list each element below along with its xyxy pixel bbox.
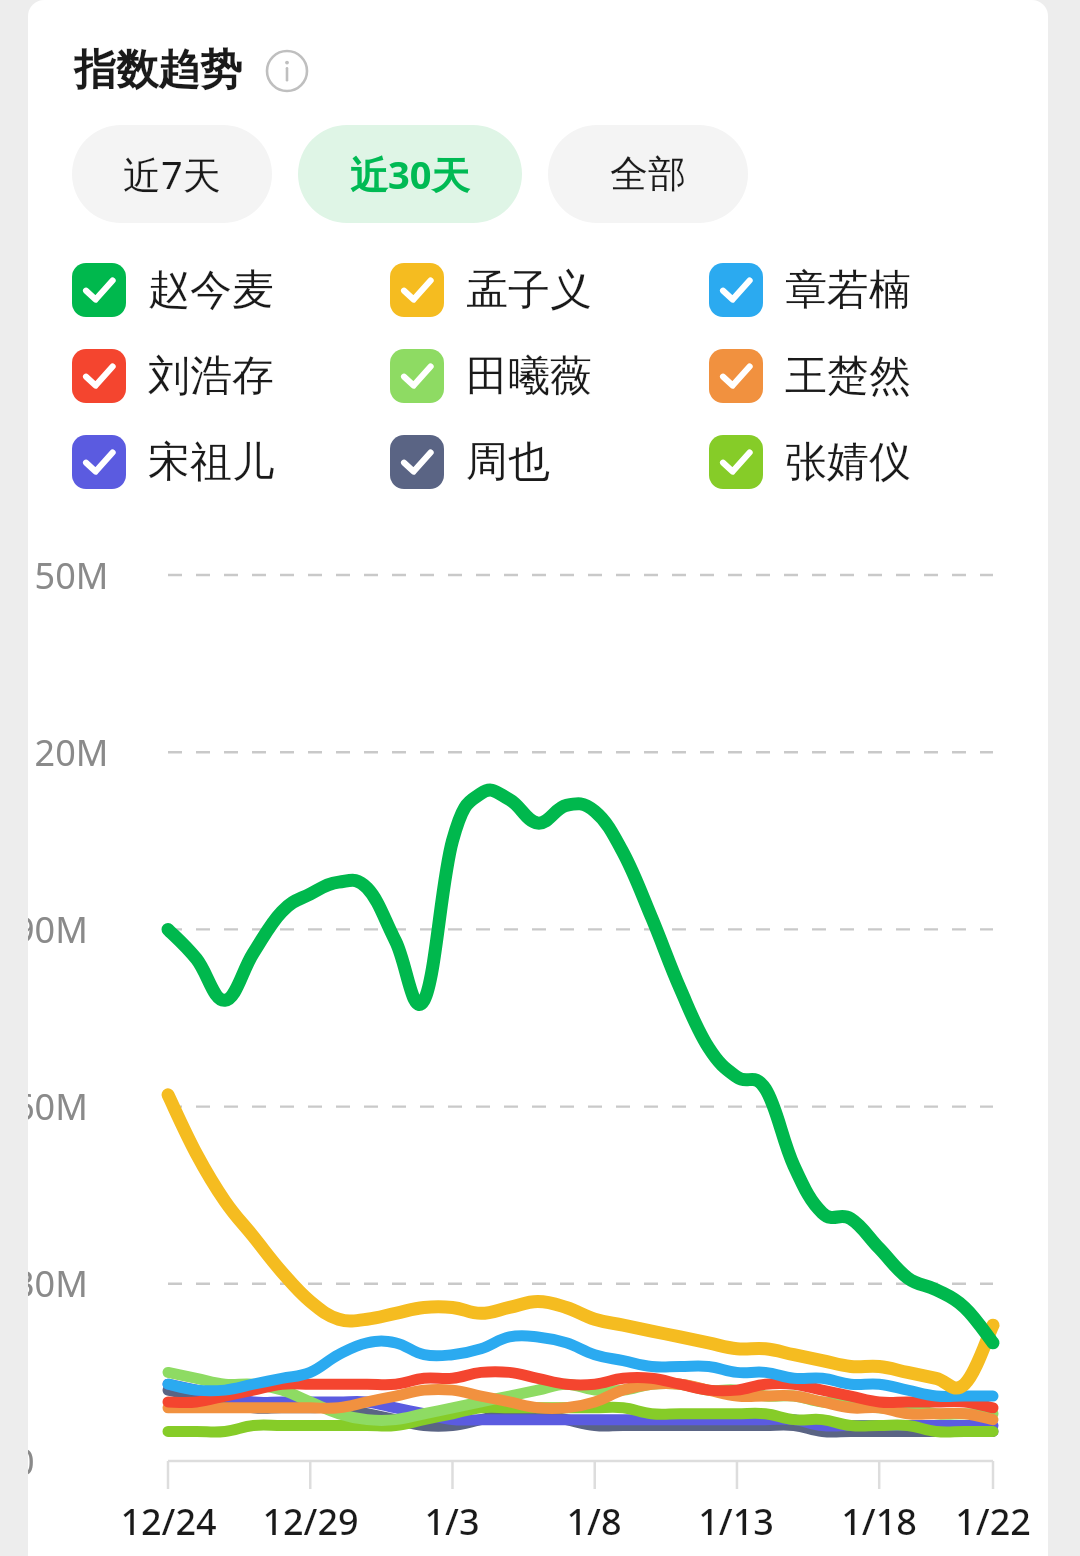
button[interactable]: Info xyxy=(264,48,310,94)
button[interactable]: 宋祖儿 xyxy=(72,435,274,489)
staticText: 章若楠 xyxy=(785,264,911,317)
staticText: 1/8 xyxy=(566,1497,622,1546)
button[interactable]: 王楚然 xyxy=(709,349,911,403)
button[interactable]: 章若楠 xyxy=(709,263,911,317)
staticText: 0 xyxy=(28,1437,144,1486)
staticText: 60M xyxy=(28,1082,144,1131)
staticText: 12/29 xyxy=(262,1497,359,1546)
staticText: 90M xyxy=(28,905,144,954)
staticText: 赵今麦 xyxy=(148,264,274,317)
staticText: 1/13 xyxy=(698,1497,774,1546)
button[interactable]: 田曦薇 xyxy=(390,349,592,403)
button[interactable]: 赵今麦 xyxy=(72,263,274,317)
staticText: 1/22 xyxy=(955,1497,1031,1546)
button[interactable]: 近30天 xyxy=(298,125,522,223)
button[interactable]: 张婧仪 xyxy=(709,435,911,489)
staticText: 刘浩存 xyxy=(148,350,274,403)
button[interactable]: 周也 xyxy=(390,435,550,489)
staticText: 指数趋势 xyxy=(74,44,242,97)
button[interactable]: 孟子义 xyxy=(390,263,592,317)
staticText: 孟子义 xyxy=(466,264,592,317)
staticText: 近30天 xyxy=(350,148,470,200)
staticText: 田曦薇 xyxy=(466,350,592,403)
staticText: 王楚然 xyxy=(785,350,911,403)
button[interactable]: 近7天 xyxy=(72,125,272,223)
staticText: 150M xyxy=(28,551,144,600)
staticText: 周也 xyxy=(466,436,550,489)
button[interactable]: 刘浩存 xyxy=(72,349,274,403)
staticText: 1/18 xyxy=(841,1497,917,1546)
staticText: 张婧仪 xyxy=(785,436,911,489)
staticText: 30M xyxy=(28,1259,144,1308)
staticText: 全部 xyxy=(610,150,686,198)
button[interactable]: 全部 xyxy=(548,125,748,223)
staticText: 1/3 xyxy=(424,1497,480,1546)
staticText: 宋祖儿 xyxy=(148,436,274,489)
staticText: 120M xyxy=(28,728,144,777)
staticText: 近7天 xyxy=(123,148,221,200)
staticText: 12/24 xyxy=(120,1497,217,1546)
